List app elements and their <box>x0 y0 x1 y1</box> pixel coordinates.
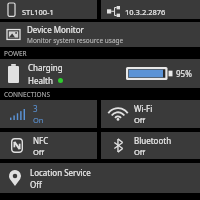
staticText: CONNECTIONS <box>4 90 51 99</box>
staticText: 95% <box>176 68 192 79</box>
staticText: Off <box>33 147 45 157</box>
staticText: POWER <box>4 49 27 58</box>
staticText: Off <box>134 115 146 125</box>
button[interactable]: Device Monitor <box>0 22 200 47</box>
staticText: Health <box>28 75 53 86</box>
staticText: 10.3.2.2876 <box>125 7 166 17</box>
button[interactable]: Bluetooth <box>101 132 200 159</box>
staticText: Device Monitor <box>27 24 84 35</box>
staticText: Off <box>30 179 42 190</box>
button[interactable]: STL100-1 <box>0 0 97 19</box>
staticText: Wi-Fi <box>134 103 153 114</box>
staticText: 3 <box>33 103 38 114</box>
button[interactable]: NFC <box>0 132 97 159</box>
staticText: Location Service <box>30 167 91 178</box>
button[interactable]: Location Service <box>0 163 200 193</box>
staticText: Off <box>134 147 146 157</box>
staticText: Monitor system resource usage <box>27 36 124 45</box>
staticText: On <box>33 115 44 125</box>
button[interactable]: Mobile network <box>0 100 97 128</box>
staticText: NFC <box>33 135 49 146</box>
button[interactable]: 10.3.2.2876 <box>101 0 200 19</box>
staticText: Charging <box>28 62 63 73</box>
staticText: Bluetooth <box>134 135 172 146</box>
staticText: STL100-1 <box>22 7 54 17</box>
button[interactable]: Charging <box>0 59 200 88</box>
button[interactable]: Wi-Fi <box>101 100 200 128</box>
